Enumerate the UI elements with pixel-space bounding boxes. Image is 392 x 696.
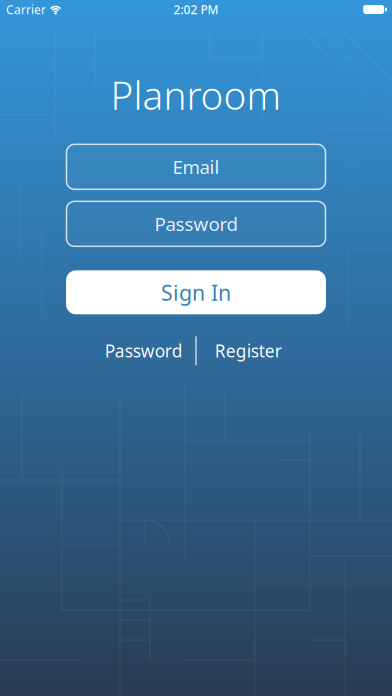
- staticText: Register: [215, 339, 282, 362]
- staticText: Password: [154, 211, 237, 236]
- button[interactable]: Sign In: [66, 270, 326, 314]
- staticText: Sign In: [161, 278, 231, 306]
- button[interactable]: Email: [66, 144, 325, 189]
- button[interactable]: Password: [92, 339, 195, 362]
- staticText: Planroom: [110, 69, 281, 120]
- staticText: Carrier: [6, 1, 46, 17]
- button[interactable]: Password: [66, 201, 325, 246]
- staticText: Password: [105, 339, 183, 362]
- button[interactable]: Register: [197, 339, 300, 362]
- staticText: Email: [172, 154, 219, 179]
- staticText: 2:02 PM: [173, 1, 218, 17]
